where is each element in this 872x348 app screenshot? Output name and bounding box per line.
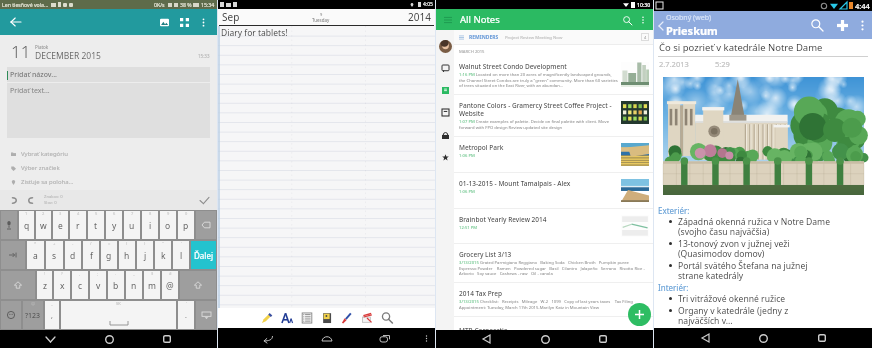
button[interactable]: Back: [697, 330, 713, 346]
button[interactable]: 9: [160, 211, 176, 239]
button[interactable]: Backspace: [196, 211, 216, 239]
button[interactable]: 5: [88, 211, 104, 239]
button[interactable]: $: [144, 271, 160, 299]
button[interactable]: Recents: [377, 330, 393, 346]
button[interactable]: Back: [7, 13, 25, 31]
button[interactable]: /: [83, 241, 99, 269]
button[interactable]: #: [162, 271, 178, 299]
button[interactable]: Font: [277, 309, 297, 327]
staticText: 9: [320, 12, 323, 17]
button[interactable]: Save: [197, 193, 211, 207]
button[interactable]: Search: [377, 309, 397, 327]
button[interactable]: 3: [53, 211, 68, 239]
button[interactable]: +: [46, 241, 63, 269]
button[interactable]: Shift: [180, 271, 216, 299]
button[interactable]: Navigation item: [439, 106, 452, 119]
button[interactable]: More options: [637, 14, 649, 26]
button[interactable]: Tab: [1, 241, 25, 269]
button[interactable]: 01-13-2015 - Mount Tamalpais - Alex: [454, 179, 653, 215]
button[interactable]: Home: [755, 330, 771, 346]
button[interactable]: Add note: [628, 303, 651, 326]
button[interactable]: Home: [537, 331, 553, 347]
button[interactable]: Brainbot Yearly Review 2014: [454, 215, 653, 250]
button[interactable]: Search: [620, 13, 634, 27]
button[interactable]: 7: [124, 211, 140, 239]
button[interactable]: Brush: [337, 309, 357, 327]
button[interactable]: Navigation item: [439, 62, 452, 75]
button[interactable]: Add: [833, 16, 851, 34]
button[interactable]: Voice input: [1, 211, 17, 239]
button[interactable]: Account: [439, 40, 452, 53]
button[interactable]: ?: [54, 271, 70, 299]
button[interactable]: Grid view: [175, 13, 193, 31]
staticText: Výber značiek: [21, 164, 60, 172]
button[interactable]: _: [126, 271, 142, 299]
button[interactable]: Vybrať kategóriu: [11, 149, 217, 159]
button[interactable]: .: [108, 271, 124, 299]
button[interactable]: -: [65, 241, 81, 269]
staticText: b: [113, 280, 119, 292]
button[interactable]: ;: [90, 271, 106, 299]
button[interactable]: 6: [106, 211, 122, 239]
button[interactable]: !: [37, 271, 52, 299]
button[interactable]: ": [155, 241, 171, 269]
button[interactable]: ): [137, 241, 153, 269]
button[interactable]: Navigation item: [439, 129, 452, 142]
staticText: 6: [113, 211, 116, 216]
button[interactable]: Recents: [159, 331, 175, 347]
button[interactable]: Ďalej: [191, 241, 216, 269]
button[interactable]: Zisťuje sa poloha...: [11, 177, 217, 187]
button[interactable]: Home: [319, 330, 335, 346]
button[interactable]: Recents: [814, 330, 830, 346]
button[interactable]: Pantone Colors - Gramercy Street Coffee …: [454, 101, 653, 143]
button[interactable]: More options: [855, 18, 869, 32]
button[interactable]: Home: [101, 331, 117, 347]
button[interactable]: Emoji: [1, 301, 21, 329]
button[interactable]: 1: [19, 211, 34, 239]
button[interactable]: Menu: [441, 13, 455, 27]
button[interactable]: Hide keyboard: [196, 301, 216, 329]
button[interactable]: Back: [478, 331, 494, 347]
button[interactable]: 2014 Tax Prep: [454, 289, 653, 323]
button[interactable]: SK: [61, 301, 176, 329]
button[interactable]: Výber značiek: [11, 163, 217, 173]
button[interactable]: Redo: [25, 193, 39, 207]
button[interactable]: ': [173, 241, 189, 269]
button[interactable]: ☺: [23, 301, 43, 329]
button[interactable]: 2: [36, 211, 51, 239]
button[interactable]: List: [297, 309, 317, 327]
button[interactable]: Walnut Street Condo Development: [454, 62, 653, 101]
button[interactable]: Back: [260, 330, 276, 346]
button[interactable]: Navigation item: [439, 151, 452, 164]
button[interactable]: Pridať text...: [7, 83, 210, 138]
button[interactable]: *: [27, 241, 44, 269]
button[interactable]: More options: [194, 13, 212, 31]
button[interactable]: Note: [317, 309, 337, 327]
button[interactable]: Undo: [5, 193, 19, 207]
button[interactable]: Search: [808, 16, 826, 34]
button[interactable]: Metropol Park: [454, 143, 653, 179]
button[interactable]: ,: [72, 271, 88, 299]
button[interactable]: Shift: [1, 271, 35, 299]
button[interactable]: REMINDERS: [459, 30, 649, 44]
button[interactable]: Eraser: [357, 309, 377, 327]
button[interactable]: (: [119, 241, 135, 269]
button[interactable]: 8: [142, 211, 158, 239]
button[interactable]: Recents: [595, 331, 611, 347]
button[interactable]: Grocery List 3/13: [454, 250, 653, 289]
staticText: /: [90, 241, 92, 246]
button[interactable]: Menu: [421, 333, 431, 343]
button[interactable]: Hide keyboard: [42, 331, 58, 347]
button[interactable]: 0: [178, 211, 194, 239]
button[interactable]: Insert image: [155, 13, 173, 31]
staticText: 3/13/2015 Checklist: Receipts Mileage W-…: [459, 299, 649, 310]
button[interactable]: =: [101, 241, 117, 269]
button[interactable]: Up: [656, 21, 665, 30]
button[interactable]: _: [45, 301, 59, 329]
button[interactable]: ': [178, 301, 194, 329]
button[interactable]: Navigation item: [439, 84, 452, 97]
button[interactable]: 4: [70, 211, 86, 239]
staticText: Walnut Street Condo Development: [459, 62, 567, 71]
button[interactable]: Pen: [257, 309, 277, 327]
button[interactable]: Pridať názov...: [7, 67, 210, 82]
